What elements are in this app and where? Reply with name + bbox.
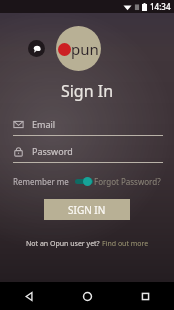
staticText: Sign In	[0, 80, 174, 102]
button[interactable]: Password	[13, 145, 163, 163]
button[interactable]: Remember me	[13, 176, 93, 187]
staticText: Forgot Password?	[94, 176, 161, 187]
button[interactable]: Back	[0, 282, 58, 310]
staticText: Not an Opun user yet?	[26, 239, 102, 249]
staticText: Password	[32, 145, 73, 157]
button[interactable]: Chat support	[28, 40, 45, 57]
button[interactable]: Forgot Password?	[94, 176, 161, 187]
staticText: Remember me	[13, 176, 69, 187]
staticText: 14:34	[150, 1, 171, 12]
staticText: Email	[32, 118, 56, 130]
button[interactable]: Recent apps	[116, 282, 174, 310]
button[interactable]: Home	[58, 282, 116, 310]
staticText: SIGN IN	[68, 203, 106, 217]
staticText: pun	[71, 39, 99, 59]
button[interactable]: Email	[13, 118, 163, 136]
button[interactable]: SIGN IN	[44, 199, 130, 220]
button[interactable]: Find out more	[102, 239, 149, 249]
staticText: Find out more	[102, 239, 149, 249]
